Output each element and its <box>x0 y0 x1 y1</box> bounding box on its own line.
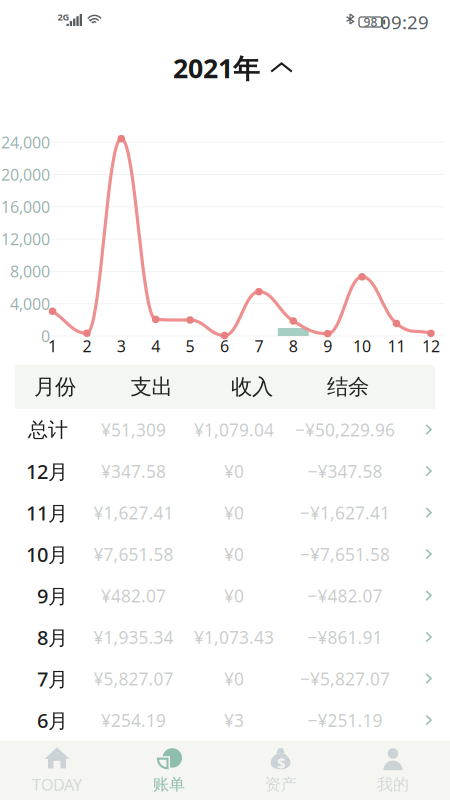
staticText: TODAY <box>32 774 82 795</box>
staticText: 09:29 <box>380 10 429 34</box>
staticText: 7月 <box>37 665 68 692</box>
button[interactable]: 9月 <box>15 575 435 616</box>
staticText: −¥7,651.58 <box>300 543 390 566</box>
staticText: ¥482.07 <box>101 584 166 607</box>
staticText: 12 <box>422 335 440 357</box>
button[interactable]: 6月 <box>15 699 435 741</box>
staticText: ¥1,073.43 <box>194 626 274 649</box>
staticText: 总计 <box>28 417 68 442</box>
button[interactable]: 8月 <box>15 616 435 658</box>
staticText: −¥50,229.96 <box>295 418 395 441</box>
staticText: ¥0 <box>224 460 244 483</box>
staticText: ¥1,935.34 <box>93 626 173 649</box>
staticText: 12月 <box>26 458 68 485</box>
button[interactable]: 总计 <box>15 409 435 450</box>
staticText: ¥3 <box>224 709 244 732</box>
button[interactable]: 12月 <box>15 450 435 492</box>
staticText: 24,000 <box>1 132 50 153</box>
staticText: 2G <box>57 11 69 23</box>
staticText: 2021年 <box>173 50 260 86</box>
staticText: 8月 <box>37 624 68 651</box>
staticText: 2 <box>82 335 91 357</box>
staticText: 0 <box>41 325 50 347</box>
staticText: 7 <box>254 335 263 357</box>
staticText: 6月 <box>37 707 68 734</box>
staticText: ¥347.58 <box>101 460 166 483</box>
staticText: 12,000 <box>1 228 50 250</box>
button[interactable]: 账单 <box>113 741 225 800</box>
staticText: 我的 <box>377 775 409 794</box>
staticText: 资产 <box>265 775 297 794</box>
staticText: 10 <box>353 335 371 357</box>
staticText: ¥7,651.58 <box>93 543 173 566</box>
staticText: 11月 <box>26 499 68 526</box>
staticText: 3 <box>117 335 126 357</box>
staticText: 10月 <box>26 541 68 568</box>
button[interactable]: 2021年 <box>0 53 450 83</box>
staticText: 账单 <box>153 775 185 794</box>
staticText: 结余 <box>327 374 369 400</box>
staticText: 4,000 <box>10 293 50 314</box>
staticText: 支出 <box>130 374 172 400</box>
staticText: ¥254.19 <box>101 709 166 732</box>
staticText: ¥51,309 <box>101 418 166 441</box>
staticText: 8 <box>289 335 298 357</box>
staticText: 收入 <box>231 374 273 400</box>
staticText: 4 <box>151 335 160 357</box>
staticText: −¥482.07 <box>307 584 382 607</box>
staticText: −¥1,627.41 <box>300 501 390 524</box>
staticText: $ <box>277 753 285 773</box>
button[interactable]: $ <box>225 741 337 800</box>
staticText: 11 <box>387 335 405 357</box>
staticText: 16,000 <box>1 196 50 217</box>
staticText: 5 <box>186 335 195 357</box>
staticText: ¥0 <box>224 667 244 690</box>
button[interactable]: 7月 <box>15 658 435 699</box>
staticText: −¥861.91 <box>307 626 382 649</box>
staticText: −¥347.58 <box>307 460 382 483</box>
staticText: ¥0 <box>224 584 244 607</box>
staticText: 月份 <box>34 374 76 400</box>
button[interactable]: 我的 <box>337 741 449 800</box>
staticText: ¥0 <box>224 543 244 566</box>
staticText: −¥251.19 <box>307 709 382 732</box>
staticText: −¥5,827.07 <box>300 667 390 690</box>
button[interactable]: 11月 <box>15 492 435 533</box>
staticText: 9月 <box>37 582 68 609</box>
staticText: ¥0 <box>224 501 244 524</box>
staticText: ¥1,079.04 <box>194 418 274 441</box>
button[interactable]: TODAY <box>1 741 113 800</box>
staticText: 8,000 <box>10 261 50 282</box>
staticText: 20,000 <box>1 164 50 185</box>
button[interactable]: 10月 <box>15 533 435 575</box>
staticText: ¥5,827.07 <box>93 667 173 690</box>
staticText: 6 <box>220 335 229 357</box>
staticText: 98 <box>363 14 377 30</box>
staticText: 1 <box>48 335 57 357</box>
staticText: 9 <box>323 335 332 357</box>
staticText: ¥1,627.41 <box>93 501 173 524</box>
